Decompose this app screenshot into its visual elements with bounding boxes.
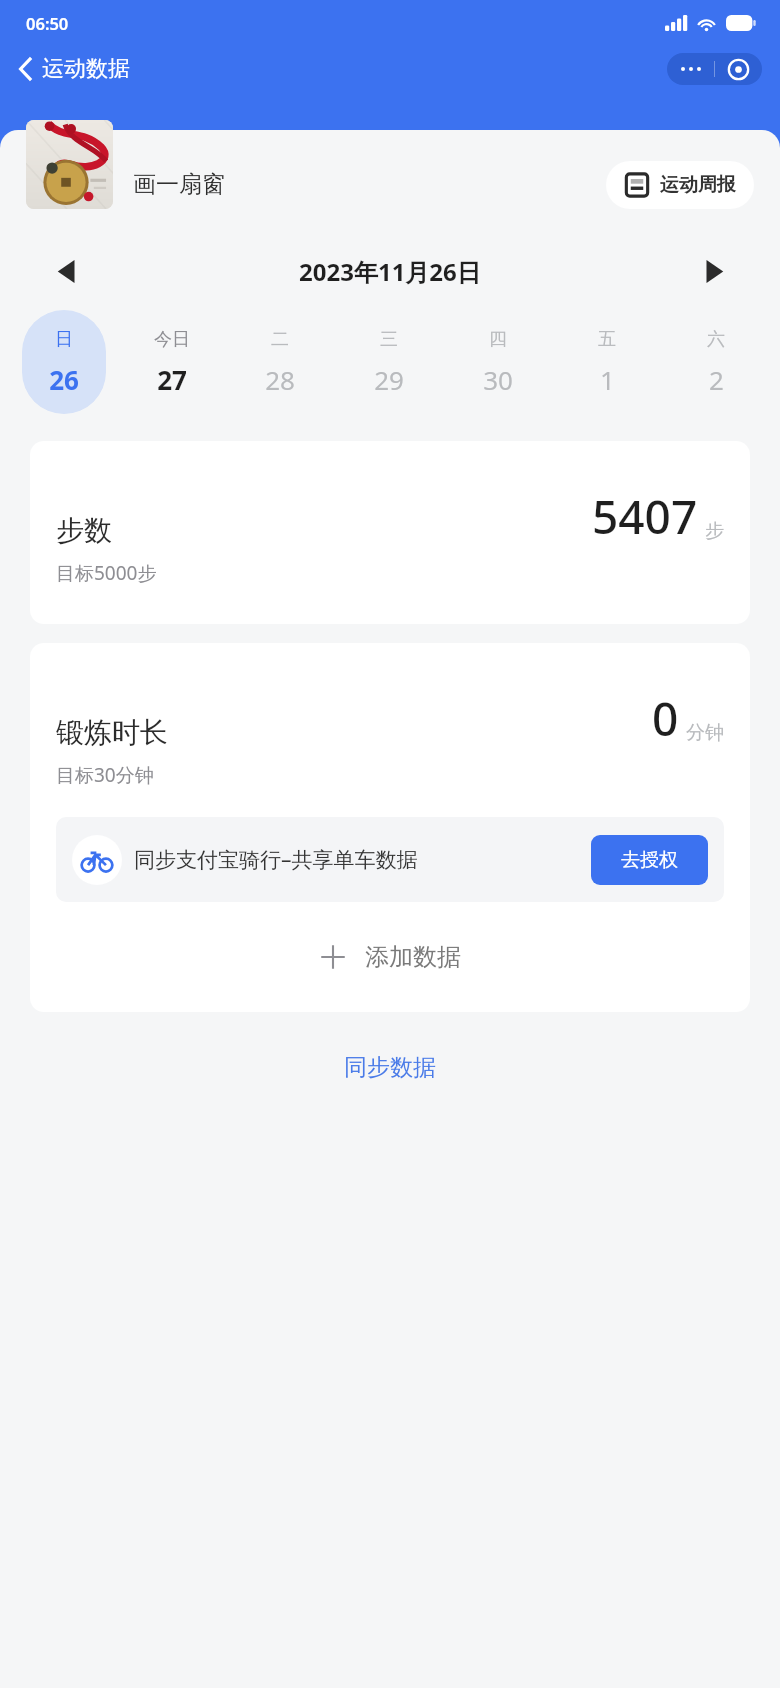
staticText: 去授权 (621, 848, 678, 872)
staticText: 同步数据 (344, 1053, 436, 1082)
button[interactable]: 添加数据 (56, 902, 724, 1012)
button[interactable]: Previous day (44, 249, 88, 293)
staticText: 五 (598, 328, 616, 351)
button[interactable]: Next day (692, 249, 736, 293)
staticText: 目标5000步 (56, 560, 157, 586)
staticText: 26 (49, 362, 79, 397)
staticText: 步数 (56, 513, 112, 548)
button[interactable]: 二 (238, 310, 322, 414)
staticText: 30 (483, 362, 513, 397)
button[interactable]: 同步数据 (326, 1043, 454, 1092)
staticText: 28 (265, 362, 295, 397)
button[interactable]: 四 (455, 310, 540, 414)
staticText: 画一扇窗 (133, 170, 225, 199)
staticText: 运动数据 (42, 55, 130, 83)
staticText: 06:50 (26, 12, 69, 34)
staticText: 三 (380, 328, 398, 351)
button[interactable]: 日 (22, 310, 106, 414)
button[interactable]: 运动数据 (14, 51, 134, 87)
staticText: 1 (600, 362, 615, 397)
staticText: 四 (489, 328, 507, 351)
staticText: 今日 (154, 328, 190, 351)
staticText: 六 (707, 328, 725, 351)
staticText: 同步支付宝骑行–共享单车数据 (134, 845, 418, 874)
button[interactable]: 五 (564, 310, 649, 414)
staticText: 2 (709, 362, 724, 397)
staticText: 2023年11月26日 (299, 255, 481, 288)
staticText: 锻炼时长 (56, 715, 168, 750)
staticText: 目标30分钟 (56, 762, 154, 788)
staticText: 分钟 (686, 721, 724, 745)
staticText: 二 (271, 328, 289, 351)
staticText: 0 (652, 687, 679, 750)
staticText: 运动周报 (660, 173, 736, 197)
button[interactable]: 运动周报 (606, 161, 754, 209)
staticText: 27 (157, 362, 187, 397)
button[interactable]: 六 (673, 310, 758, 414)
button[interactable]: 同步支付宝骑行–共享单车数据 (56, 817, 724, 902)
staticText: 29 (374, 362, 404, 397)
staticText: 日 (55, 328, 73, 351)
staticText: 5407 (592, 485, 698, 548)
button[interactable]: 三 (346, 310, 431, 414)
staticText: 添加数据 (365, 942, 461, 972)
button[interactable]: 去授权 (591, 835, 708, 885)
staticText: 步 (705, 519, 724, 543)
button[interactable]: 步数 (30, 441, 750, 624)
button[interactable]: More and close (667, 53, 762, 85)
button[interactable]: 今日 (130, 310, 214, 414)
